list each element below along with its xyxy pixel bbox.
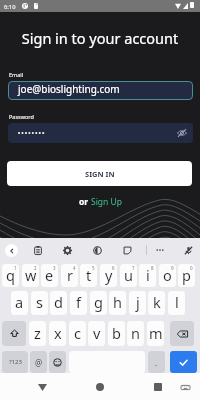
staticText: 1 bbox=[14, 265, 17, 271]
staticText: h bbox=[113, 292, 122, 312]
staticText: 2 bbox=[34, 265, 37, 271]
staticText: Sign Up bbox=[91, 196, 122, 208]
button[interactable]: Show password bbox=[8, 123, 193, 143]
staticText: 6:10 bbox=[4, 3, 16, 11]
staticText: j bbox=[136, 292, 140, 312]
staticText: @ bbox=[35, 357, 43, 368]
button[interactable]: Keyboard tool bbox=[181, 243, 195, 257]
staticText: p bbox=[182, 265, 191, 285]
button[interactable]: Keyboard tool bbox=[153, 243, 167, 257]
staticText: m bbox=[149, 323, 163, 343]
button[interactable]: r bbox=[61, 264, 78, 287]
staticText: 9 bbox=[171, 265, 174, 271]
staticText: 0 bbox=[190, 265, 193, 271]
button[interactable]: q bbox=[2, 264, 19, 287]
button[interactable]: Keyboard tool bbox=[31, 243, 45, 257]
staticText: u bbox=[124, 265, 133, 285]
button[interactable]: Backspace bbox=[170, 321, 194, 346]
staticText: y bbox=[105, 265, 113, 285]
button[interactable]: Enter bbox=[170, 351, 197, 373]
staticText: b bbox=[112, 323, 121, 343]
button[interactable]: t bbox=[80, 264, 97, 287]
button[interactable]: s bbox=[31, 291, 48, 315]
staticText: z bbox=[34, 323, 41, 343]
button[interactable]: z bbox=[29, 321, 46, 346]
staticText: 8 bbox=[151, 265, 154, 271]
staticText: x bbox=[54, 323, 62, 343]
staticText: f bbox=[76, 292, 81, 312]
staticText: or bbox=[79, 196, 91, 208]
button[interactable]: b bbox=[108, 321, 125, 346]
staticText: s bbox=[36, 292, 43, 312]
button[interactable]: Keyboard tool bbox=[120, 243, 134, 257]
button[interactable]: Shift bbox=[2, 321, 26, 346]
button[interactable]: k bbox=[148, 291, 165, 315]
button[interactable]: v bbox=[88, 321, 105, 346]
staticText: Password bbox=[9, 113, 34, 120]
staticText: SIGN IN bbox=[85, 169, 115, 179]
staticText: l bbox=[175, 292, 179, 312]
button[interactable]: o bbox=[159, 264, 176, 287]
staticText: i bbox=[146, 265, 150, 285]
button[interactable]: f bbox=[70, 291, 87, 315]
staticText: e bbox=[45, 265, 54, 285]
button[interactable]: g bbox=[90, 291, 107, 315]
button[interactable]: Recents bbox=[147, 376, 169, 398]
staticText: v bbox=[93, 323, 101, 343]
button[interactable]: w bbox=[22, 264, 39, 287]
staticText: r bbox=[67, 265, 73, 285]
button[interactable]: Period bbox=[148, 351, 165, 373]
button[interactable]: n bbox=[127, 321, 144, 346]
staticText: 6 bbox=[112, 265, 115, 271]
button[interactable]: l bbox=[168, 291, 185, 315]
button[interactable]: j bbox=[129, 291, 146, 315]
staticText: k bbox=[153, 292, 161, 312]
button[interactable]: Keyboard tool bbox=[90, 243, 104, 257]
staticText: d bbox=[54, 292, 63, 312]
button[interactable]: a bbox=[11, 291, 28, 315]
staticText: q bbox=[6, 265, 15, 285]
button[interactable]: Show password bbox=[176, 127, 188, 139]
button[interactable]: Emoji bbox=[49, 351, 66, 373]
button[interactable]: i bbox=[139, 264, 156, 287]
button[interactable]: p bbox=[178, 264, 195, 287]
staticText: 7 bbox=[132, 265, 135, 271]
staticText: Email bbox=[9, 71, 24, 78]
button[interactable]: At sign bbox=[30, 351, 47, 373]
button[interactable]: Back bbox=[5, 244, 18, 257]
button[interactable]: x bbox=[49, 321, 66, 346]
button[interactable]: h bbox=[109, 291, 126, 315]
staticText: 5 bbox=[92, 265, 95, 271]
staticText: joe@bioslighting.com bbox=[18, 82, 120, 96]
staticText: o bbox=[163, 265, 172, 285]
staticText: w bbox=[25, 265, 37, 285]
button[interactable]: e bbox=[41, 264, 58, 287]
button[interactable]: Switch keyboard bbox=[174, 376, 196, 398]
staticText: ?123 bbox=[9, 358, 22, 366]
button[interactable]: d bbox=[50, 291, 67, 315]
staticText: . bbox=[155, 357, 158, 368]
staticText: n bbox=[131, 323, 140, 343]
staticText: Sign in to your account bbox=[0, 28, 200, 48]
button[interactable]: Symbols bbox=[2, 351, 28, 373]
staticText: a bbox=[15, 292, 24, 312]
button[interactable]: joe@bioslighting.com bbox=[8, 81, 193, 100]
button[interactable]: Back bbox=[31, 376, 53, 398]
button[interactable]: y bbox=[100, 264, 117, 287]
staticText: 3 bbox=[53, 265, 56, 271]
button[interactable]: Keyboard tool bbox=[60, 243, 74, 257]
staticText: t bbox=[86, 265, 92, 285]
button[interactable]: SIGN IN bbox=[7, 161, 192, 186]
button[interactable]: u bbox=[120, 264, 137, 287]
button[interactable]: Home bbox=[89, 376, 111, 398]
staticText: g bbox=[94, 292, 103, 312]
button[interactable]: m bbox=[147, 321, 164, 346]
button[interactable]: c bbox=[69, 321, 86, 346]
staticText: 4 bbox=[73, 265, 76, 271]
button[interactable]: Sign Up bbox=[91, 196, 122, 208]
staticText: c bbox=[74, 323, 81, 343]
